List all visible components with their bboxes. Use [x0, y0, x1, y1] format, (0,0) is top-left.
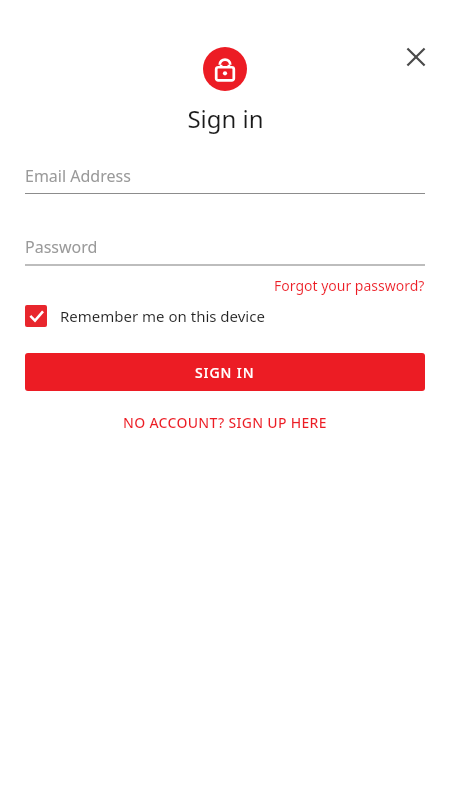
button[interactable]: Email Address	[25, 158, 425, 193]
button[interactable]: Remember me on this device	[25, 305, 425, 327]
staticText: Sign in	[187, 102, 264, 135]
staticText: NO ACCOUNT? SIGN UP HERE	[123, 413, 327, 432]
staticText: SIGN IN	[195, 363, 255, 382]
button[interactable]: Close	[396, 37, 436, 77]
staticText: Password	[25, 236, 98, 258]
button[interactable]: SIGN IN	[25, 353, 425, 391]
staticText: Email Address	[25, 165, 131, 187]
button[interactable]: Forgot your password?	[274, 275, 425, 296]
staticText: Remember me on this device	[60, 306, 265, 326]
button[interactable]: NO ACCOUNT? SIGN UP HERE	[117, 410, 333, 435]
staticText: Forgot your password?	[274, 276, 425, 295]
button[interactable]: Password	[25, 229, 425, 264]
